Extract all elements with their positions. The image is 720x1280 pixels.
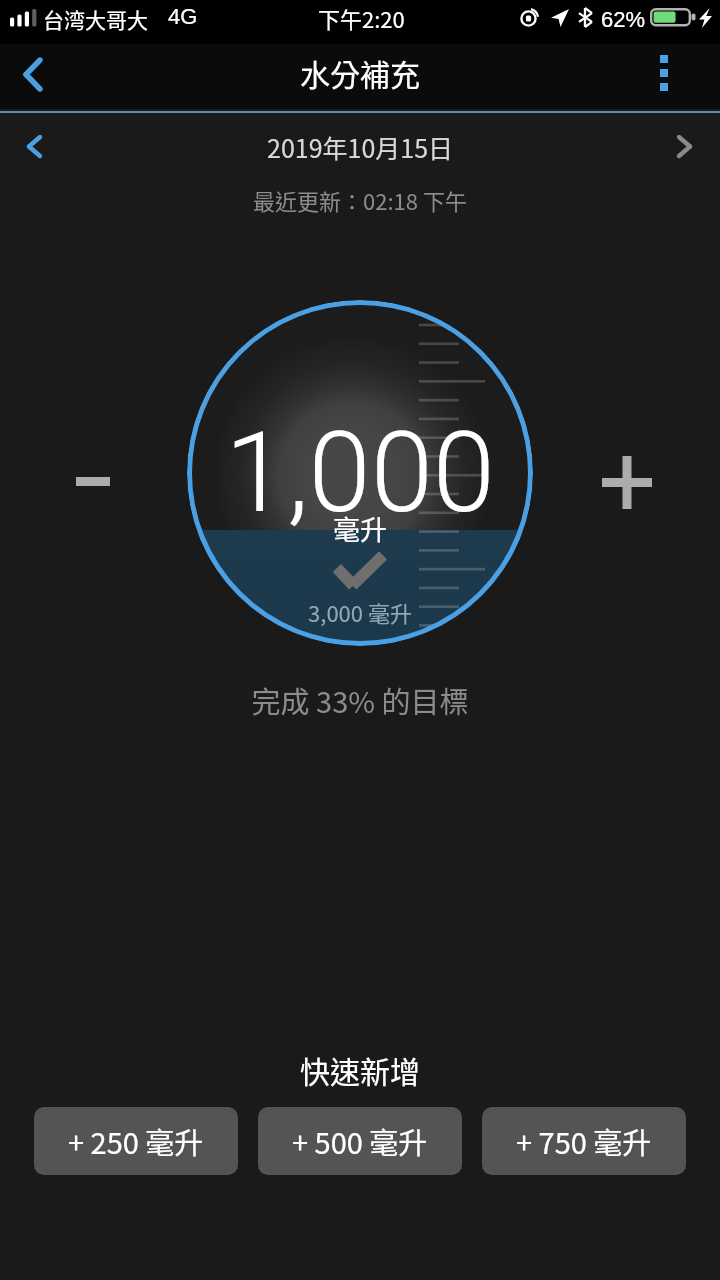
button[interactable]: Decrease [53,441,133,521]
button[interactable]: 1,000 [187,300,533,646]
staticText: + 750 毫升 [516,1120,652,1162]
staticText: 台湾大哥大 [43,4,148,34]
staticText: 毫升 [333,509,387,548]
button[interactable]: Increase [587,442,667,522]
staticText: 4G [168,4,198,29]
staticText: 1,000 [225,407,495,538]
staticText: 最近更新：02:18 下午 [0,184,720,216]
button[interactable]: Next day [648,112,720,182]
staticText: + 250 毫升 [68,1120,204,1162]
button[interactable]: + 500 毫升 [258,1107,462,1175]
staticText: 快速新增 [0,1048,720,1091]
staticText: + 500 毫升 [292,1120,428,1162]
button[interactable]: + 750 毫升 [482,1107,686,1175]
button[interactable]: Back [0,44,66,109]
staticText: 2019年10月15日 [267,129,454,165]
button[interactable]: More options [608,44,720,109]
staticText: 完成 33% 的目標 [0,679,720,721]
staticText: 下午2:20 [318,2,405,34]
staticText: 水分補充 [300,51,420,94]
button[interactable]: + 250 毫升 [34,1107,238,1175]
staticText: 3,000 毫升 [308,596,412,628]
button[interactable]: Previous day [0,112,72,182]
staticText: 62% [601,7,646,32]
